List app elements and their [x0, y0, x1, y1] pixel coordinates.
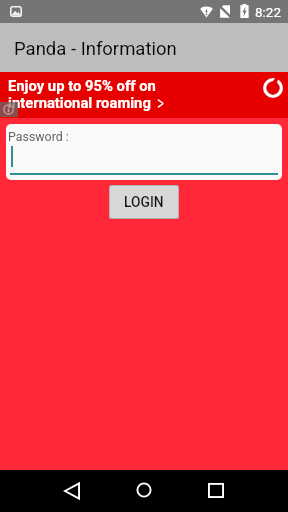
staticText: international roaming: [8, 94, 151, 111]
button[interactable]: Enjoy up to 95% off on: [0, 72, 288, 118]
button[interactable]: Password :: [6, 124, 282, 180]
staticText: Password :: [8, 129, 69, 144]
button[interactable]: Recents: [192, 470, 240, 512]
button[interactable]: Back: [48, 470, 96, 512]
button[interactable]: Ad info: [0, 102, 18, 117]
button[interactable]: LOGIN: [110, 186, 178, 218]
staticText: Panda - Information: [14, 38, 177, 60]
staticText: Enjoy up to 95% off on: [8, 77, 156, 94]
staticText: 8:22: [255, 4, 282, 20]
button[interactable]: Home: [120, 470, 168, 512]
staticText: LOGIN: [124, 194, 164, 210]
